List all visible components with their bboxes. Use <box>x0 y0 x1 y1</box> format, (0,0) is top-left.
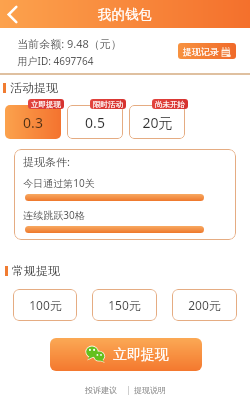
staticText: 我的钱包 <box>98 6 152 23</box>
staticText: 用户ID: 4697764 <box>17 54 94 68</box>
button[interactable]: 20元 <box>129 105 185 139</box>
staticText: 当前余额: 9.48（元） <box>17 36 122 51</box>
button[interactable]: 150元 <box>92 289 157 321</box>
staticText: 150元 <box>108 297 141 313</box>
staticText: 0.5 <box>85 113 105 132</box>
button[interactable]: 100元 <box>13 289 77 321</box>
staticText: 连续跳跃30格 <box>23 208 85 222</box>
button[interactable]: 0.3 <box>5 105 61 139</box>
staticText: 提现条件: <box>23 154 70 169</box>
button[interactable]: Back <box>0 0 24 28</box>
button[interactable]: 200元 <box>172 289 237 321</box>
staticText: 活动提现 <box>10 80 58 95</box>
button[interactable]: 提现说明 <box>134 385 166 395</box>
staticText: 100元 <box>29 297 62 313</box>
staticText: 限时活动 <box>93 100 123 109</box>
staticText: 0.3 <box>23 113 43 132</box>
staticText: 提现记录 <box>183 46 219 57</box>
button[interactable]: 0.5 <box>67 105 123 139</box>
staticText: 立即提现 <box>113 346 169 364</box>
staticText: 200元 <box>188 297 221 313</box>
button[interactable]: 投诉建议 <box>85 385 117 395</box>
staticText: 立即提现 <box>31 100 61 109</box>
staticText: 20元 <box>142 113 173 132</box>
staticText: 尚未开始 <box>155 100 185 109</box>
staticText: 今日通过第10关 <box>23 176 95 190</box>
button[interactable]: 立即提现 <box>50 338 202 371</box>
staticText: 常规提现 <box>12 263 60 278</box>
button[interactable]: 提现记录 <box>178 43 236 59</box>
staticText: | <box>117 384 134 395</box>
